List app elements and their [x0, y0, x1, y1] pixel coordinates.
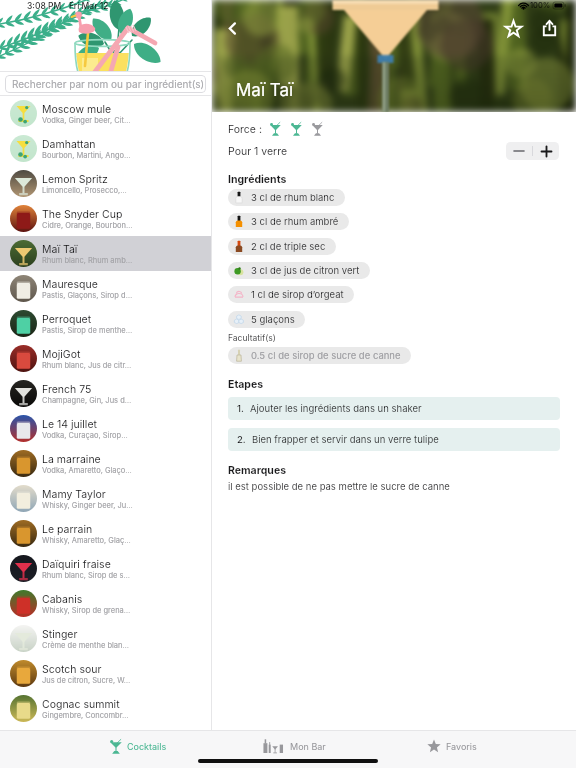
button[interactable]: 3 cl de jus de citron vert — [228, 262, 370, 279]
staticText: Cidre, Orange, Bourbon… — [42, 221, 133, 230]
button[interactable]: Stinger — [0, 621, 211, 656]
staticText: Whisky, Sirop de grena… — [42, 606, 131, 615]
staticText: Force : — [228, 123, 262, 136]
staticText: Le parrain — [42, 523, 93, 536]
button[interactable]: La marraine — [0, 446, 211, 481]
staticText: Damhattan — [42, 138, 96, 151]
staticText: Crème de menthe blan… — [42, 641, 129, 650]
staticText: 3:08 PM — [27, 1, 62, 11]
staticText: Rhum blanc, Rhum amb… — [42, 256, 133, 265]
staticText: Fri Mar 12 — [69, 1, 109, 11]
button[interactable]: Mon Bar — [216, 731, 373, 761]
button[interactable]: Perroquet — [0, 306, 211, 341]
button[interactable]: 5 glaçons — [228, 311, 305, 328]
button[interactable]: Cocktails — [60, 731, 216, 761]
staticText: 1 cl de sirop d’orgeat — [251, 289, 344, 300]
staticText: Jus de citron, Sucre, W… — [42, 676, 131, 685]
button[interactable]: Rechercher par nom ou par ingrédient(s) — [5, 75, 206, 93]
staticText: Le 14 juillet — [42, 418, 97, 431]
staticText: Bien frapper et servir dans un verre tul… — [252, 434, 439, 445]
button[interactable]: Mamy Taylor — [0, 481, 211, 516]
staticText: Vodka, Curaçao, Sirop… — [42, 431, 128, 440]
staticText: Rhum blanc, Jus de citr… — [42, 361, 132, 370]
staticText: Mamy Taylor — [42, 488, 106, 501]
button[interactable]: Moscow mule — [0, 96, 211, 131]
button[interactable]: Damhattan — [0, 131, 211, 166]
staticText: Lemon Spritz — [42, 173, 108, 186]
staticText: 3 cl de rhum blanc — [251, 192, 335, 203]
staticText: MojiGot — [42, 348, 81, 361]
staticText: Remarques — [228, 464, 287, 477]
staticText: 2 cl de triple sec — [251, 241, 326, 252]
staticText: Vodka, Ginger beer, Cit… — [42, 116, 131, 125]
staticText: Cognac summit — [42, 698, 120, 711]
button[interactable]: Favoris — [373, 731, 530, 761]
button[interactable]: Le parrain — [0, 516, 211, 551]
staticText: Stinger — [42, 628, 78, 641]
button[interactable]: Mauresque — [0, 271, 211, 306]
staticText: Daïquiri fraise — [42, 558, 111, 571]
staticText: Ajouter les ingrédients dans un shaker — [250, 403, 422, 414]
button[interactable]: 3 cl de rhum ambré — [228, 213, 349, 230]
button[interactable]: 1. — [228, 397, 560, 420]
staticText: 3 cl de jus de citron vert — [251, 265, 360, 276]
staticText: Limoncello, Prosecco,… — [42, 186, 127, 195]
button[interactable]: MojiGot — [0, 341, 211, 376]
staticText: Mauresque — [42, 278, 98, 291]
button[interactable]: Share — [535, 14, 563, 42]
staticText: 5 glaçons — [251, 314, 295, 325]
staticText: 3 cl de rhum ambré — [251, 216, 339, 227]
staticText: Ingrédients — [228, 173, 287, 186]
button[interactable]: Decrease — [506, 142, 532, 160]
staticText: Pastis, Sirop de menthe… — [42, 326, 133, 335]
staticText: Maï Taï — [236, 80, 294, 101]
staticText: Favoris — [446, 741, 477, 752]
staticText: 1. — [237, 403, 244, 414]
staticText: Cocktails — [127, 741, 167, 752]
staticText: Pour 1 verre — [228, 145, 288, 158]
staticText: Pastis, Glaçons, Sirop d… — [42, 291, 133, 300]
staticText: Champagne, Gin, Jus d… — [42, 396, 132, 405]
button[interactable]: The Snyder Cup — [0, 201, 211, 236]
button[interactable]: 1 cl de sirop d’orgeat — [228, 286, 354, 303]
staticText: Moscow mule — [42, 103, 112, 116]
staticText: 0.5 cl de sirop de sucre de canne — [251, 350, 401, 361]
staticText: il est possible de ne pas mettre le sucr… — [228, 481, 450, 492]
staticText: Whisky, Amaretto, Glaç… — [42, 536, 131, 545]
button[interactable]: 0.5 cl de sirop de sucre de canne — [228, 347, 411, 364]
staticText: French 75 — [42, 383, 92, 396]
button[interactable]: Scotch sour — [0, 656, 211, 691]
staticText: Bourbon, Martini, Ango… — [42, 151, 131, 160]
button[interactable]: 3 cl de rhum blanc — [228, 189, 345, 206]
staticText: Vodka, Amaretto, Glaço… — [42, 466, 132, 475]
button[interactable]: Back — [218, 14, 246, 42]
staticText: Cabanis — [42, 593, 83, 606]
staticText: Rhum blanc, Sirop de s… — [42, 571, 131, 580]
button[interactable]: Cognac summit — [0, 691, 211, 726]
staticText: The Snyder Cup — [42, 208, 123, 221]
staticText: Maï Taï — [42, 243, 78, 256]
button[interactable]: Maï Taï — [0, 236, 211, 271]
staticText: Facultatif(s) — [228, 333, 276, 343]
staticText: Whisky, Ginger beer, Ju… — [42, 501, 133, 510]
button[interactable]: Cabanis — [0, 586, 211, 621]
staticText: Mon Bar — [290, 741, 326, 752]
button[interactable]: 2 cl de triple sec — [228, 238, 336, 255]
staticText: Gingembre, Concombr… — [42, 711, 129, 720]
staticText: 2. — [237, 434, 246, 445]
button[interactable]: Daïquiri fraise — [0, 551, 211, 586]
button[interactable]: 2. — [228, 428, 560, 451]
button[interactable]: French 75 — [0, 376, 211, 411]
button[interactable]: Favorite — [499, 14, 527, 42]
staticText: 100% — [530, 1, 551, 10]
button[interactable]: Lemon Spritz — [0, 166, 211, 201]
staticText: Scotch sour — [42, 663, 102, 676]
staticText: Rechercher par nom ou par ingrédient(s) — [12, 78, 205, 90]
staticText: Etapes — [228, 378, 264, 391]
button[interactable]: Le 14 juillet — [0, 411, 211, 446]
button[interactable]: Increase — [533, 142, 559, 160]
staticText: Perroquet — [42, 313, 92, 326]
staticText: La marraine — [42, 453, 101, 466]
